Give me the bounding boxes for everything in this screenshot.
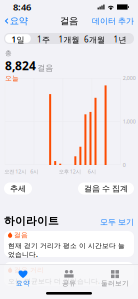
staticText: 걸음 <box>60 15 78 27</box>
staticText: 요약 <box>10 15 28 27</box>
staticText: 1일 <box>11 34 24 43</box>
staticText: 1개월 <box>58 34 79 43</box>
staticText: 걸음 <box>14 231 28 239</box>
staticText: 오늘 평균보다 더 걸었습니다. <box>8 277 100 286</box>
staticText: 모두 보기 <box>100 217 134 227</box>
staticText: 걸음 <box>37 63 53 73</box>
button[interactable]: 걸음 거리 <box>4 262 134 286</box>
button[interactable]: 1일 <box>5 34 31 43</box>
staticText: 6시 <box>88 168 96 175</box>
staticText: 6시 <box>30 168 38 175</box>
button[interactable]: 6개월 <box>82 34 107 43</box>
button[interactable]: 요약 <box>0 270 46 287</box>
staticText: 0 <box>123 161 126 169</box>
button[interactable]: 걸음 <box>4 231 134 257</box>
staticText: 8,824 <box>5 58 36 74</box>
button[interactable]: 1주 <box>31 34 56 43</box>
staticText: 하이라이트 <box>4 214 59 227</box>
staticText: 걸음 수 집계 <box>84 184 128 193</box>
staticText: 2,000 <box>123 74 136 82</box>
button[interactable]: 요약 <box>0 15 33 27</box>
button[interactable]: 모두 보기 <box>100 217 134 227</box>
staticText: 1주 <box>37 34 50 43</box>
staticText: 요약 <box>16 279 30 287</box>
button[interactable]: 추세 <box>4 182 32 194</box>
button[interactable]: 둘러보기 <box>92 270 138 287</box>
staticText: 총 <box>5 49 12 57</box>
button[interactable]: 걸음 수 집계 <box>78 182 134 194</box>
staticText: 오후 12시 <box>59 168 81 175</box>
staticText: 오늘 <box>5 74 19 82</box>
staticText: 1년 <box>113 34 126 43</box>
button[interactable]: 공유 <box>46 270 92 287</box>
button[interactable]: 1개월 <box>56 34 82 43</box>
staticText: 추세 <box>10 184 26 193</box>
staticText: 데이터 추가 <box>92 16 134 26</box>
staticText: 6개월 <box>84 34 105 43</box>
staticText: 1,000 <box>123 118 136 125</box>
staticText: 걸음 거리 <box>14 266 44 274</box>
staticText: 현재 걷기 거리가 평소 이 시간보다 늘었습니다. <box>8 242 125 259</box>
button[interactable]: 1년 <box>107 34 133 43</box>
staticText: 공유 <box>62 279 76 287</box>
staticText: 8:46 <box>13 1 31 13</box>
button[interactable]: 데이터 추가 <box>88 15 138 27</box>
staticText: 오전 12시 <box>4 168 26 175</box>
staticText: 둘러보기 <box>101 279 129 287</box>
